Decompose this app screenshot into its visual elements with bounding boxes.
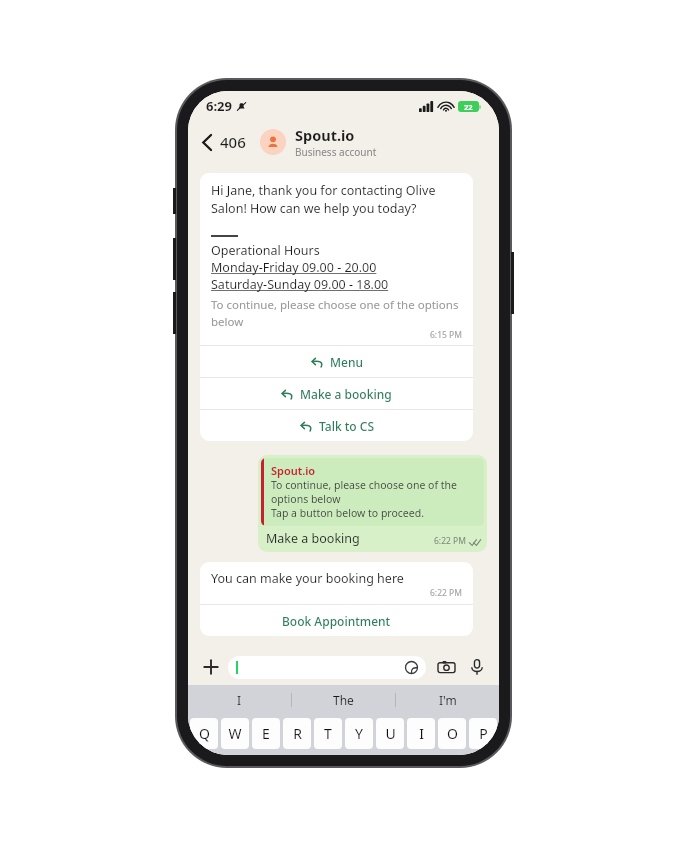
button[interactable]: The [292,685,395,715]
staticText: 6:22 PM [434,535,466,547]
staticText: I [419,724,424,743]
staticText: To continue, please choose one of the op… [211,297,462,329]
staticText: W [228,724,242,743]
button[interactable]: Camera [434,655,458,679]
button[interactable]: Menu [200,346,473,377]
staticText: Monday-Friday 09.00 - 20.00 [211,259,377,276]
staticText: U [385,724,396,743]
button[interactable]: T [314,718,342,749]
staticText: Menu [330,354,363,370]
button[interactable]: Spout.io [260,125,485,159]
staticText: Saturday-Sunday 09.00 - 18.00 [211,276,389,293]
staticText: Make a booking [266,530,360,547]
button[interactable]: O [438,718,466,749]
staticText: E [262,724,270,743]
button[interactable]: P [469,718,497,749]
staticText: Spout.io [295,125,355,145]
staticText: Talk to CS [319,418,374,434]
staticText: To continue, please choose one of the op… [271,478,476,506]
staticText: Spout.io [271,463,316,478]
button[interactable]: Make a booking [200,378,473,409]
button[interactable]: U [376,718,404,749]
staticText: The [333,692,354,708]
button[interactable]: W [221,718,249,749]
staticText: P [479,724,488,743]
button[interactable]: Talk to CS [200,410,473,441]
button[interactable]: R [283,718,311,749]
staticText: Hi Jane, thank you for contacting Olive … [211,182,462,217]
button[interactable]: 406 [200,128,248,156]
staticText: Tap a button below to proceed. [271,506,424,520]
staticText: Y [355,724,363,743]
button[interactable]: Q [190,718,218,749]
button[interactable]: I [407,718,435,749]
staticText: T [324,724,332,743]
staticText: 6:15 PM [430,329,462,341]
button[interactable]: Y [345,718,373,749]
staticText: 6:22 PM [430,587,462,599]
button[interactable]: I [188,685,291,715]
staticText: O [447,724,458,743]
staticText: 22 [464,102,473,112]
button[interactable]: I'm [396,685,499,715]
staticText: 406 [220,132,246,152]
button[interactable] [228,656,426,679]
staticText: Business account [295,145,377,159]
staticText: 6:29 [206,97,232,115]
staticText: You can make your booking here [211,570,404,587]
staticText: I [237,692,242,708]
button[interactable]: Attach [198,654,224,680]
staticText: Q [199,724,210,743]
button[interactable]: E [252,718,280,749]
staticText: I'm [439,692,457,708]
staticText: Make a booking [300,386,392,402]
staticText: Book Appointment [282,613,391,629]
staticText: R [293,724,302,743]
button[interactable]: Voice message [465,655,489,679]
button[interactable]: Book Appointment [200,605,473,636]
staticText: Operational Hours [211,242,320,259]
